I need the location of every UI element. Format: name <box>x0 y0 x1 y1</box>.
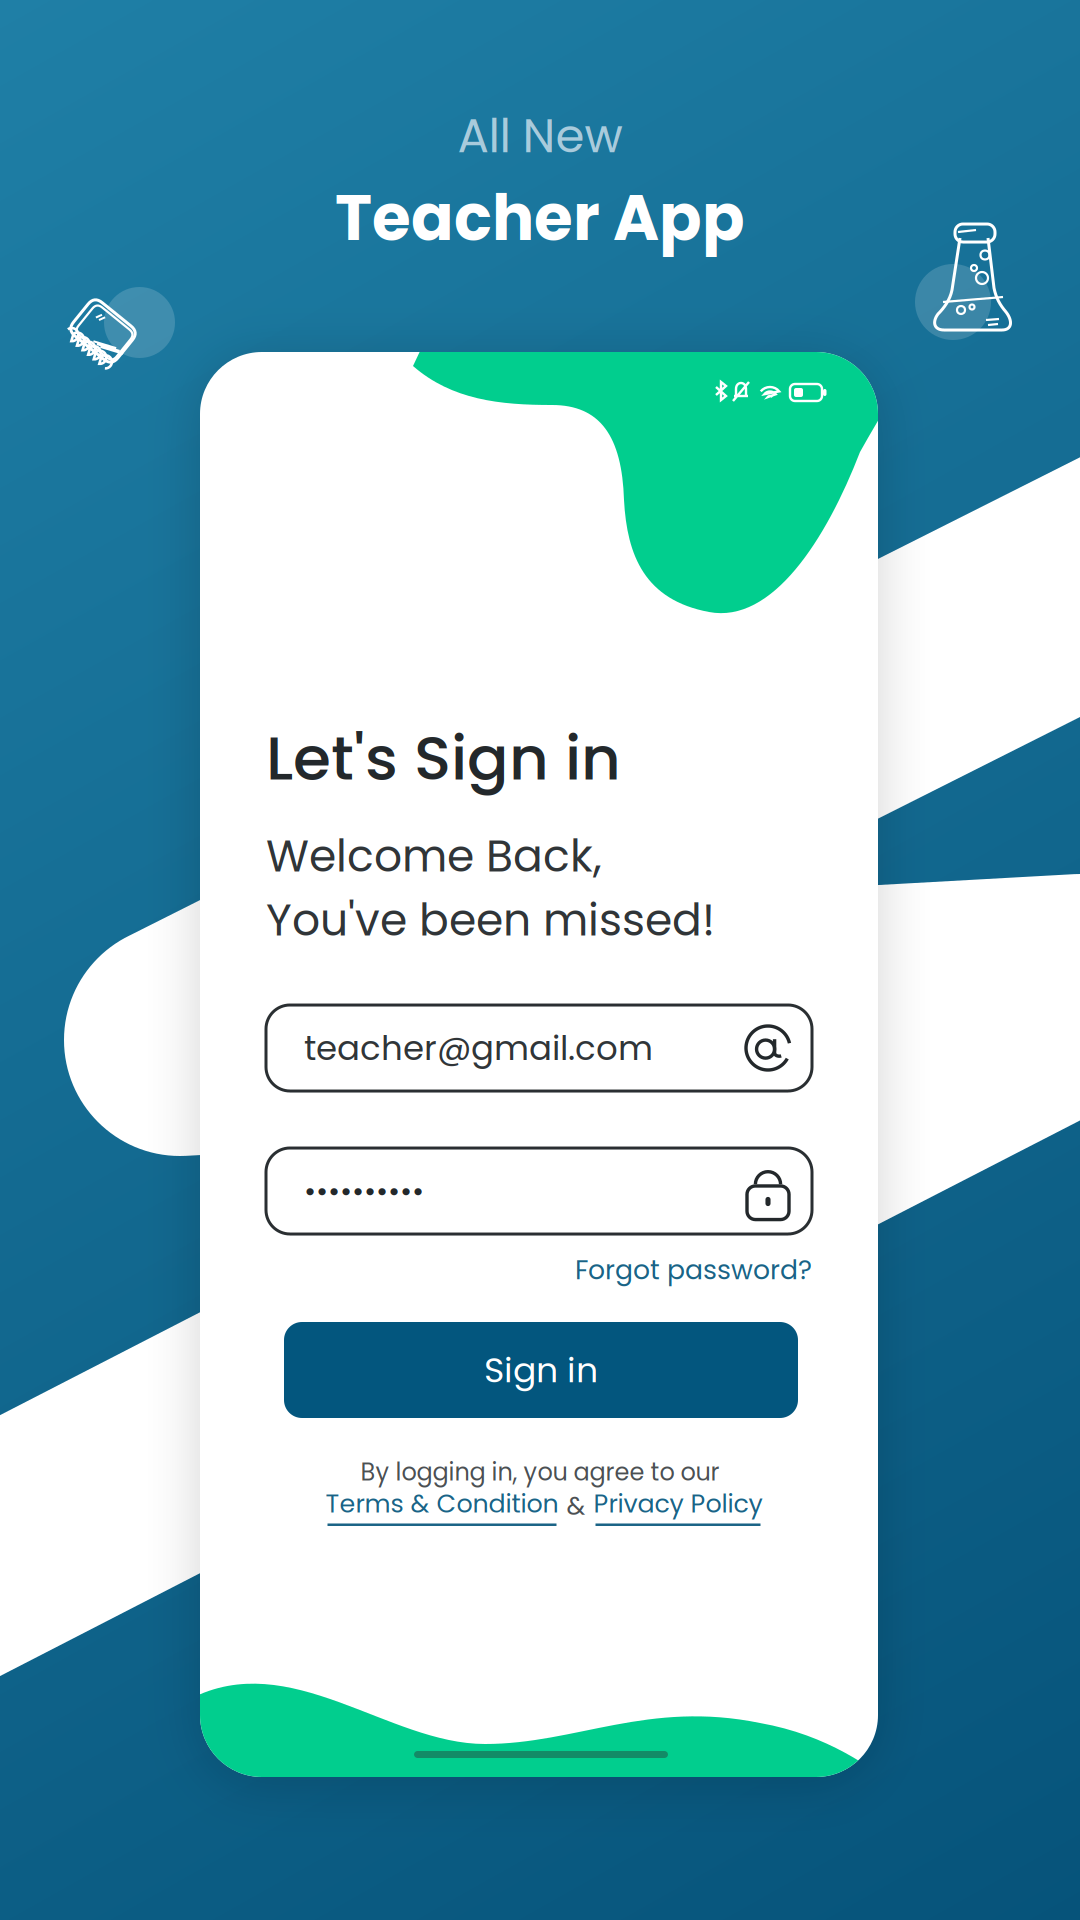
button[interactable]: teacher@gmail.com <box>266 1005 812 1091</box>
button[interactable]: Terms & Condition <box>325 1486 558 1526</box>
staticText: All New <box>457 103 622 169</box>
staticText: Terms & Condition <box>325 1486 558 1521</box>
staticText: & <box>566 1488 585 1524</box>
staticText: Privacy Policy <box>593 1486 762 1521</box>
staticText: Let's Sign in <box>266 715 621 801</box>
button[interactable]: Privacy Policy <box>593 1486 762 1526</box>
button[interactable]: Forgot password? <box>400 1244 812 1296</box>
staticText: •••••••••• <box>304 1170 424 1212</box>
staticText: teacher@gmail.com <box>304 1024 653 1072</box>
button[interactable]: •••••••••• <box>266 1148 812 1234</box>
staticText: Forgot password? <box>575 1251 812 1289</box>
button[interactable]: Sign in <box>284 1322 798 1418</box>
staticText: By logging in, you agree to our <box>360 1455 719 1489</box>
staticText: Welcome Back, <box>266 825 602 887</box>
staticText: You've been missed! <box>266 889 715 951</box>
staticText: Sign in <box>484 1346 598 1394</box>
staticText: Teacher App <box>335 174 745 262</box>
